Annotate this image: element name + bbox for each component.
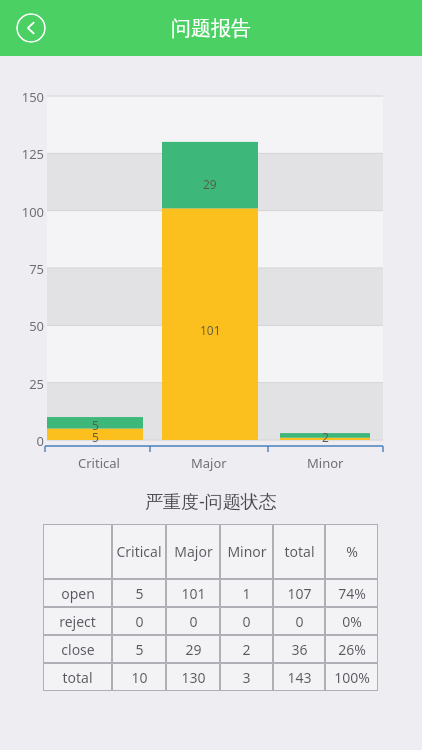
staticText: 0 — [36, 432, 44, 450]
staticText: 5 — [135, 584, 144, 603]
staticText: total — [62, 668, 93, 687]
staticText: 101 — [181, 584, 206, 603]
button[interactable]: % — [326, 525, 377, 578]
button[interactable]: 143 — [274, 664, 324, 690]
button[interactable]: 2 — [221, 636, 272, 662]
staticText: 75 — [29, 260, 44, 278]
staticText: % — [346, 542, 358, 561]
button[interactable]: 0 — [167, 608, 219, 634]
staticText: 150 — [21, 88, 44, 106]
staticText: 5 — [135, 640, 144, 659]
staticText: 1 — [242, 584, 251, 603]
staticText: 143 — [287, 668, 312, 687]
staticText: 29 — [185, 640, 202, 659]
button[interactable]: Critical — [113, 525, 165, 578]
button[interactable]: 107 — [274, 580, 324, 606]
staticText: 107 — [287, 584, 312, 603]
staticText: 问题报告 — [171, 16, 251, 41]
staticText: 100 — [21, 203, 44, 221]
staticText: 2 — [242, 640, 251, 659]
staticText: 5 — [92, 417, 99, 433]
button[interactable]: 74% — [326, 580, 377, 606]
staticText: Major — [191, 454, 227, 472]
button[interactable]: 101 — [167, 580, 219, 606]
staticText: Minor — [307, 454, 344, 472]
staticText: 3 — [242, 668, 251, 687]
button[interactable]: 5 — [113, 580, 165, 606]
staticText: close — [61, 640, 95, 659]
staticText: 0 — [295, 612, 304, 631]
button[interactable]: Minor — [221, 525, 272, 578]
staticText: 严重度-问题状态 — [145, 489, 277, 514]
staticText: 0 — [135, 612, 144, 631]
button[interactable]: 3 — [221, 664, 272, 690]
button[interactable]: Major — [167, 525, 219, 578]
button[interactable]: 10 — [113, 664, 165, 690]
staticText: 25 — [29, 375, 44, 393]
staticText: 130 — [181, 668, 206, 687]
staticText: 101 — [200, 322, 221, 338]
button[interactable]: reject — [44, 608, 111, 634]
staticText: 5 — [92, 429, 99, 445]
staticText: 0% — [342, 612, 362, 631]
button[interactable]: 29 — [167, 636, 219, 662]
button[interactable]: Back — [16, 13, 46, 43]
staticText: 2 — [322, 429, 329, 445]
button[interactable]: 1 — [221, 580, 272, 606]
staticText: open — [61, 584, 95, 603]
button[interactable]: open — [44, 580, 111, 606]
staticText: Major — [174, 542, 213, 561]
button[interactable]: total — [44, 664, 111, 690]
staticText: Critical — [78, 454, 120, 472]
staticText: 36 — [291, 640, 308, 659]
button[interactable]: close — [44, 636, 111, 662]
staticText: 0 — [189, 612, 198, 631]
button[interactable]: total — [274, 525, 324, 578]
button[interactable]: 0 — [221, 608, 272, 634]
staticText: 100% — [334, 668, 370, 687]
staticText: 29 — [203, 176, 217, 192]
button[interactable]: 36 — [274, 636, 324, 662]
staticText: reject — [59, 612, 96, 631]
staticText: total — [284, 542, 315, 561]
staticText: Minor — [227, 542, 267, 561]
button[interactable]: 100% — [326, 664, 377, 690]
staticText: Critical — [116, 542, 162, 561]
staticText: 50 — [29, 317, 44, 335]
button[interactable]: 0 — [113, 608, 165, 634]
staticText: 10 — [131, 668, 148, 687]
button[interactable]: 130 — [167, 664, 219, 690]
button[interactable]: 0% — [326, 608, 377, 634]
button[interactable]: 5 — [113, 636, 165, 662]
staticText: 26% — [338, 640, 366, 659]
button[interactable]: 0 — [274, 608, 324, 634]
staticText: 74% — [338, 584, 366, 603]
button[interactable]: 26% — [326, 636, 377, 662]
staticText: 0 — [242, 612, 251, 631]
staticText: 125 — [21, 145, 44, 163]
